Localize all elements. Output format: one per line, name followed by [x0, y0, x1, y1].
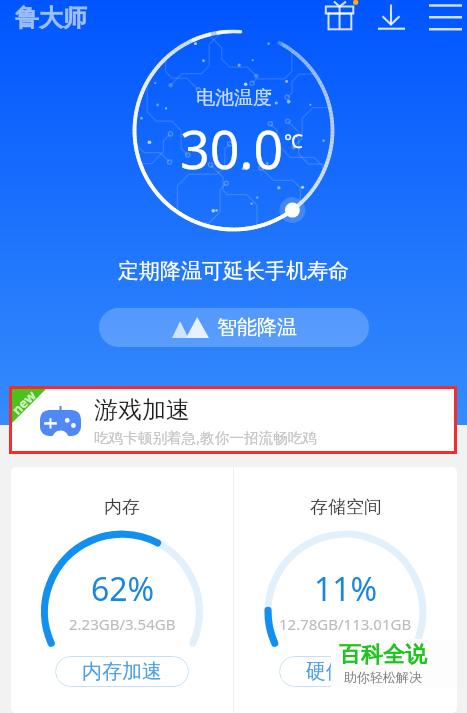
staticText: 吃鸡卡顿别着急,教你一招流畅吃鸡	[94, 427, 317, 447]
staticText: 30.0	[180, 113, 284, 184]
button[interactable]: Downloads	[374, 0, 410, 36]
staticText: 游戏加速	[94, 395, 190, 425]
staticText: 内存加速	[82, 659, 162, 684]
staticText: 12.78GB/113.01GB	[279, 614, 412, 634]
button[interactable]: Menu	[427, 0, 464, 36]
staticText: 存储空间	[310, 496, 382, 519]
button[interactable]: 智能降温	[99, 308, 369, 347]
button[interactable]: Gifts	[320, 0, 356, 36]
staticText: 硬件清理	[306, 659, 386, 684]
staticText: ℃	[284, 128, 303, 154]
button[interactable]: 游戏加速	[11, 389, 457, 451]
button[interactable]: 内存加速	[55, 656, 189, 687]
staticText: 助你轻松解决	[344, 669, 422, 685]
staticText: 鲁大师	[15, 3, 87, 33]
staticText: 电池温度	[196, 86, 272, 110]
staticText: 内存	[104, 496, 140, 519]
button[interactable]: 硬件清理	[279, 656, 413, 687]
staticText: 2.23GB/3.54GB	[69, 614, 176, 634]
staticText: 智能降温	[217, 315, 297, 340]
staticText: 百科全说	[339, 641, 427, 669]
staticText: 11%	[314, 567, 378, 611]
staticText: 62%	[91, 567, 155, 611]
staticText: 定期降温可延长手机寿命	[118, 258, 349, 284]
staticText: new	[8, 386, 40, 418]
